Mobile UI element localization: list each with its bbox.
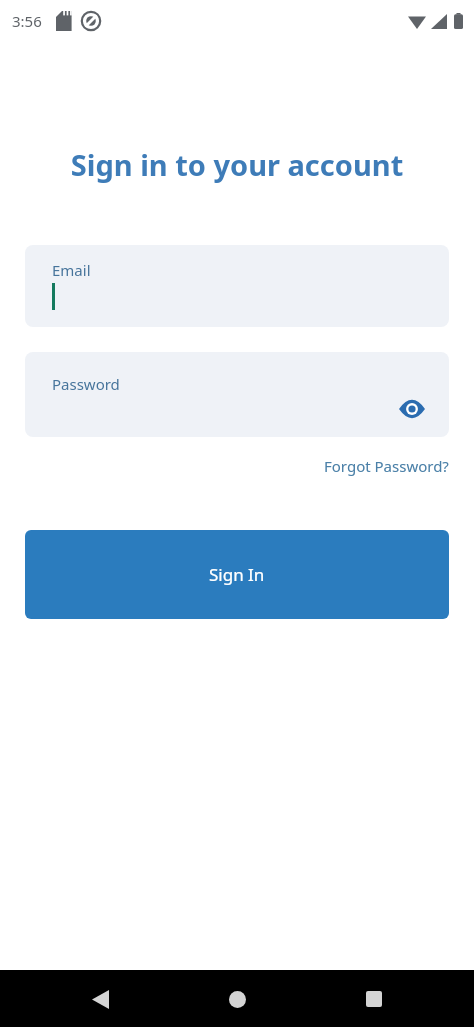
button[interactable]: Home <box>215 977 259 1021</box>
button[interactable]: Email <box>25 245 449 327</box>
button[interactable]: Recent apps <box>352 977 396 1021</box>
button[interactable]: Back <box>78 977 122 1021</box>
staticText: Forgot Password? <box>324 456 449 476</box>
staticText: Sign In <box>209 563 265 586</box>
button[interactable]: Show password <box>396 393 428 425</box>
button[interactable]: Password <box>25 352 449 437</box>
staticText: Email <box>52 260 91 280</box>
button[interactable]: Forgot Password? <box>324 456 449 476</box>
staticText: Password <box>52 374 120 394</box>
staticText: 3:56 <box>12 11 42 31</box>
button[interactable]: Sign In <box>25 530 449 619</box>
staticText: Sign in to your account <box>0 145 474 184</box>
